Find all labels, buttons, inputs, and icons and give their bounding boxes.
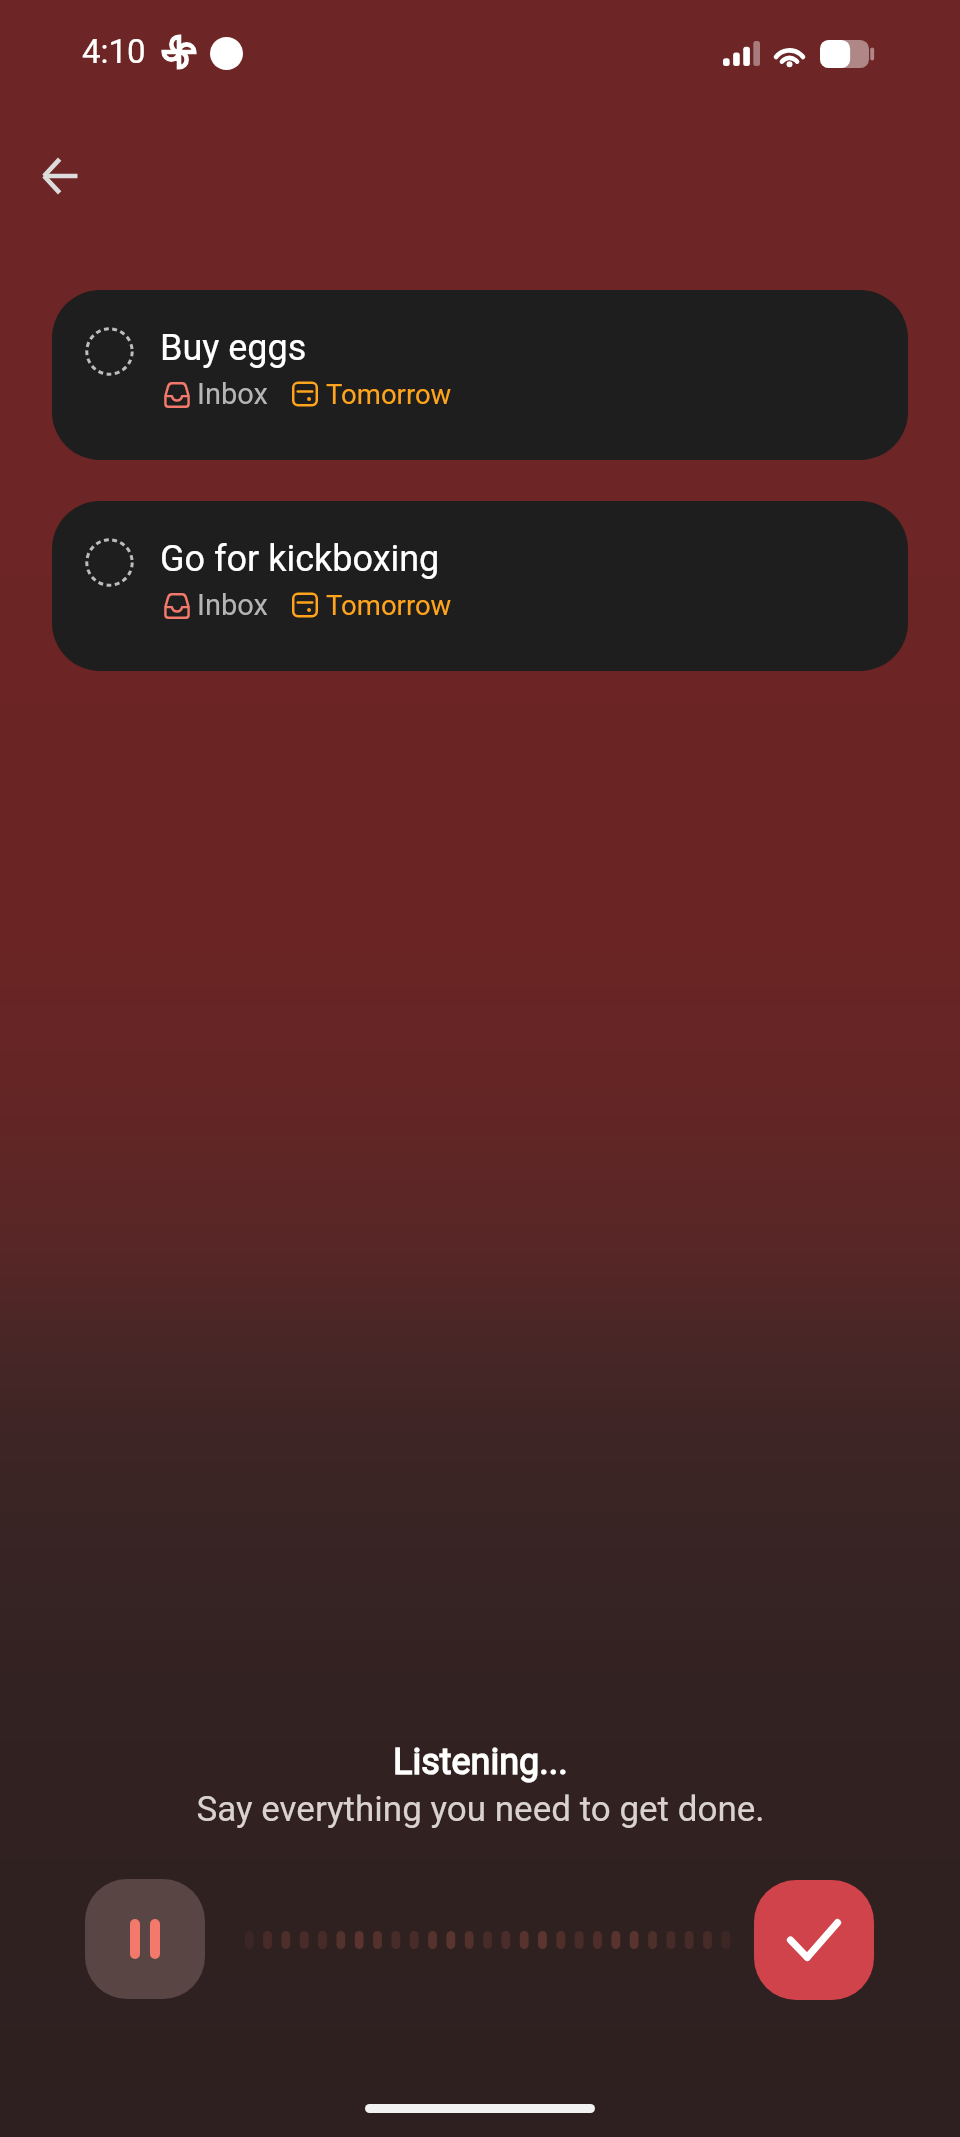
- staticText: Listening...: [393, 1741, 568, 1783]
- button[interactable]: Go for kickboxing: [52, 501, 908, 671]
- staticText: 4:10: [82, 32, 146, 71]
- staticText: Tomorrow: [326, 589, 452, 621]
- staticText: Tomorrow: [326, 378, 452, 410]
- button[interactable]: Done: [754, 1880, 874, 2000]
- staticText: Go for kickboxing: [160, 538, 440, 580]
- staticText: Buy eggs: [160, 327, 307, 369]
- button[interactable]: Back: [14, 130, 105, 221]
- staticText: Inbox: [197, 377, 268, 411]
- button[interactable]: Pause: [85, 1879, 205, 1999]
- staticText: Inbox: [197, 588, 268, 622]
- staticText: Say everything you need to get done.: [196, 1789, 765, 1830]
- button[interactable]: Buy eggs: [52, 290, 908, 460]
